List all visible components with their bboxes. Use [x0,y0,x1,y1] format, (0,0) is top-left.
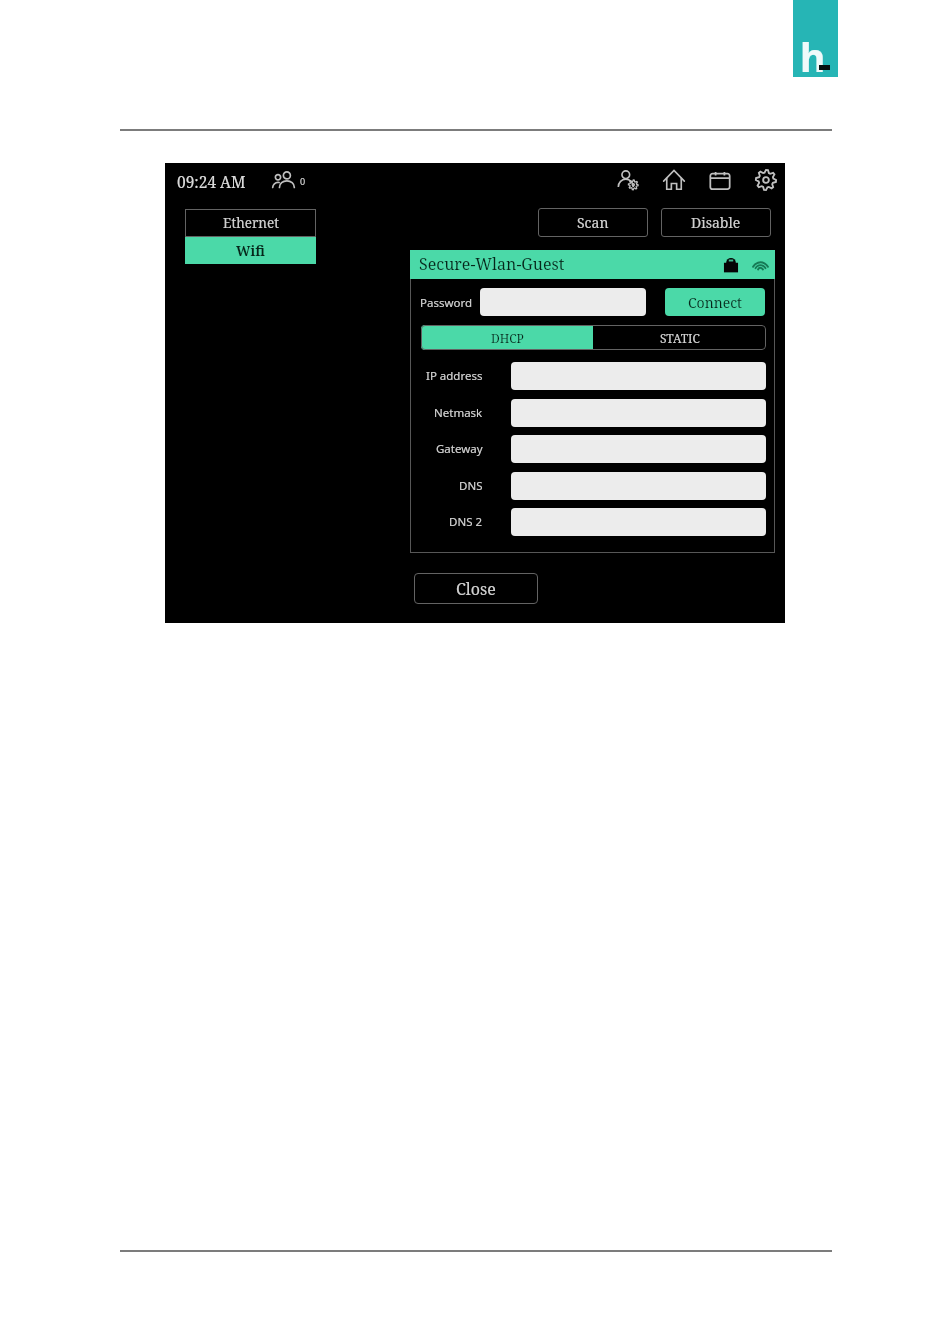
staticText: Disable [691,213,741,232]
button[interactable] [511,362,766,390]
staticText: Secure-Wlan-Guest [419,253,565,275]
button[interactable]: Wifi [185,237,316,264]
staticText: STATIC [660,330,700,346]
button[interactable] [511,399,766,427]
button[interactable] [511,472,766,500]
staticText: Scan [577,213,609,232]
staticText: Gateway [436,441,483,457]
button[interactable]: Scan [538,208,648,237]
button[interactable]: Home [663,169,685,191]
button[interactable]: Disable [661,208,771,237]
button[interactable]: Profile settings [617,169,639,191]
staticText: 0 [300,175,306,187]
staticText: 09:24 AM [177,171,246,192]
staticText: Ethernet [223,214,279,232]
button[interactable]: Calendar [709,170,731,192]
staticText: DHCP [491,330,524,346]
button[interactable] [511,435,766,463]
staticText: IP address [426,368,483,384]
staticText: DNS 2 [449,514,483,530]
button[interactable]: Ethernet [185,209,316,237]
staticText: Connect [688,293,743,312]
staticText: Password [420,295,473,311]
button[interactable]: Close [414,573,538,604]
button[interactable] [480,288,646,316]
button[interactable]: STATIC [593,325,766,350]
button[interactable]: Users [272,170,296,190]
staticText: Close [456,578,496,600]
staticText: h [800,30,826,83]
button[interactable]: DHCP [421,325,593,350]
staticText: Netmask [434,405,483,421]
staticText: Wifi [236,242,265,260]
button[interactable]: Connect [665,288,765,316]
button[interactable] [511,508,766,536]
staticText: DNS [459,478,483,494]
button[interactable]: Settings [755,169,777,191]
